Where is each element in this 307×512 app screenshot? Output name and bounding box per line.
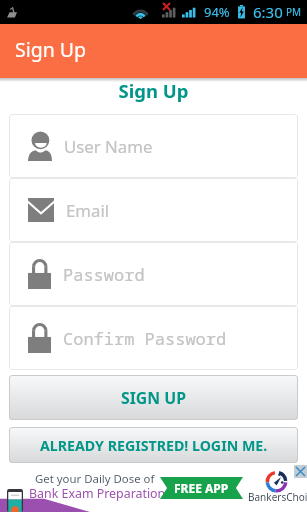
staticText: BankersChoice: [248, 490, 307, 504]
staticText: Confirm Password: [63, 327, 227, 350]
button[interactable]: Email: [9, 178, 298, 242]
staticText: Sign Up: [15, 36, 87, 63]
staticText: Email: [66, 199, 110, 222]
staticText: 94%: [204, 3, 230, 21]
button[interactable]: Get your Daily Dose of: [0, 465, 307, 512]
staticText: ALREADY REGISTRED! LOGIN ME.: [40, 436, 268, 455]
button[interactable]: ALREADY REGISTRED! LOGIN ME.: [9, 427, 298, 463]
button[interactable]: Password: [9, 242, 298, 306]
staticText: 6:30: [253, 2, 283, 22]
staticText: Bank Exam Preparation: [29, 485, 166, 502]
staticText: FREE APP: [174, 480, 229, 496]
staticText: Get your Daily Dose of: [35, 471, 155, 487]
staticText: PM: [286, 5, 302, 19]
button[interactable]: Close ad: [294, 465, 307, 478]
staticText: SIGN UP: [121, 387, 186, 409]
button[interactable]: User Name: [9, 114, 298, 178]
button[interactable]: Confirm Password: [9, 306, 298, 370]
staticText: Password: [63, 263, 145, 286]
staticText: User Name: [64, 135, 153, 158]
staticText: Sign Up: [0, 78, 307, 103]
button[interactable]: SIGN UP: [9, 375, 298, 420]
